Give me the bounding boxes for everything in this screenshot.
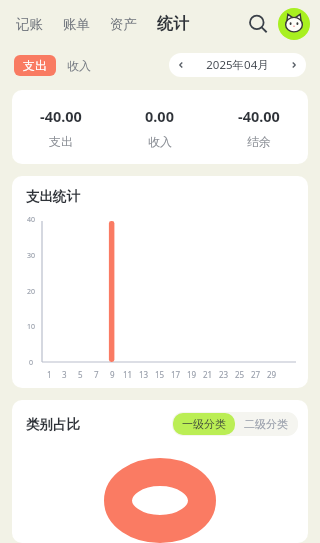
staticText: 25 xyxy=(235,369,245,380)
staticText: 1 xyxy=(47,369,52,380)
staticText: 11 xyxy=(123,369,133,380)
staticText: -40.00 xyxy=(40,106,82,126)
staticText: -40.00 xyxy=(238,106,280,126)
button[interactable]: 统计 xyxy=(155,10,191,38)
staticText: 类别占比 xyxy=(26,416,80,433)
staticText: 3 xyxy=(62,369,67,380)
staticText: 支出 xyxy=(23,58,47,73)
button[interactable]: 支出 xyxy=(14,55,56,76)
staticText: 2025年04月 xyxy=(193,57,282,73)
button[interactable]: 资产 xyxy=(108,12,139,37)
staticText: 29 xyxy=(267,369,277,380)
button[interactable]: -40.00 xyxy=(12,90,308,164)
staticText: 9 xyxy=(110,369,115,380)
button[interactable]: 账单 xyxy=(61,12,92,37)
staticText: 5 xyxy=(78,369,83,380)
staticText: 20 xyxy=(27,287,36,297)
staticText: 40 xyxy=(27,215,36,225)
staticText: 结余 xyxy=(247,134,271,149)
staticText: 30 xyxy=(27,251,36,261)
staticText: 账单 xyxy=(63,16,90,33)
staticText: 0.00 xyxy=(145,106,174,126)
staticText: 一级分类 xyxy=(182,417,226,431)
button[interactable]: Profile xyxy=(278,8,310,40)
staticText: 7 xyxy=(94,369,99,380)
button[interactable]: Search xyxy=(242,8,274,40)
staticText: 二级分类 xyxy=(244,417,288,431)
staticText: 23 xyxy=(219,369,229,380)
staticText: 资产 xyxy=(110,16,137,33)
staticText: 统计 xyxy=(157,14,189,34)
staticText: 21 xyxy=(203,369,213,380)
staticText: 19 xyxy=(187,369,197,380)
staticText: 支出 xyxy=(49,134,73,149)
staticText: 13 xyxy=(139,369,149,380)
staticText: 27 xyxy=(251,369,261,380)
button[interactable]: Next month xyxy=(282,53,306,77)
staticText: 10 xyxy=(27,322,36,332)
staticText: 15 xyxy=(155,369,165,380)
button[interactable]: Previous month xyxy=(169,53,306,77)
button[interactable]: 收入 xyxy=(64,55,94,76)
staticText: 0 xyxy=(29,358,34,368)
staticText: 支出统计 xyxy=(26,188,80,205)
button[interactable]: 二级分类 xyxy=(235,413,297,435)
button[interactable]: Previous month xyxy=(169,53,193,77)
staticText: 收入 xyxy=(148,134,172,149)
button[interactable]: 记账 xyxy=(14,12,45,37)
staticText: 17 xyxy=(171,369,181,380)
button[interactable]: 一级分类 xyxy=(173,413,235,435)
staticText: 记账 xyxy=(16,16,43,33)
staticText: 收入 xyxy=(67,58,91,73)
